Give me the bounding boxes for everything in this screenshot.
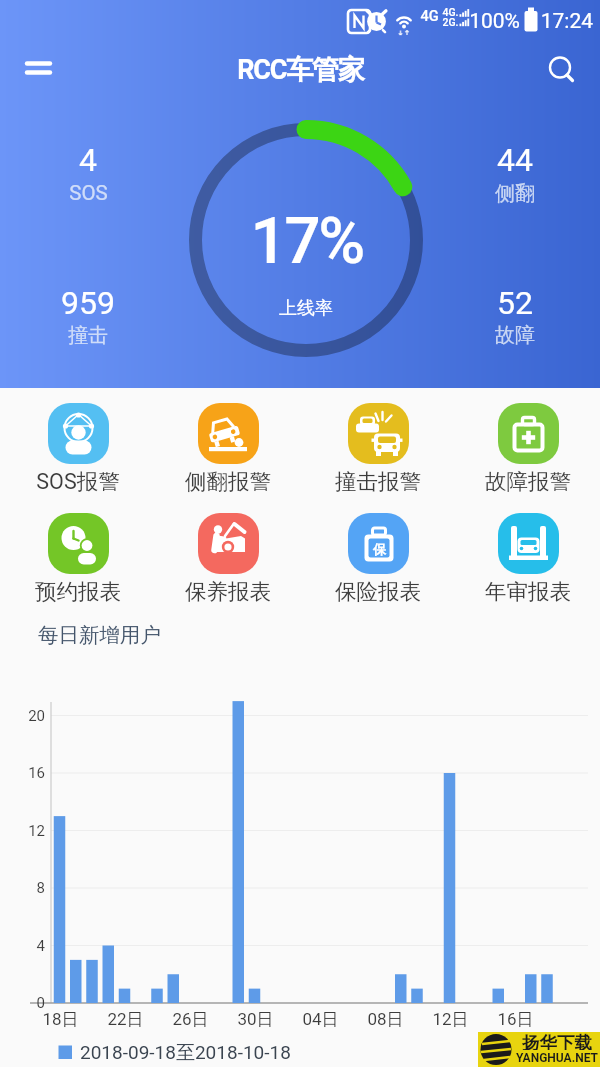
- staticText: 17:24: [540, 9, 593, 34]
- staticText: 16: [28, 764, 45, 782]
- staticText: SOS: [69, 181, 108, 205]
- staticText: 2G.: [442, 16, 459, 28]
- staticText: 2018-09-18至2018-10-18: [80, 1041, 291, 1063]
- staticText: 08日: [367, 1009, 404, 1030]
- staticText: 预约报表: [35, 578, 121, 604]
- staticText: 上线率: [279, 297, 333, 320]
- staticText: 撞击报警: [335, 468, 421, 494]
- button[interactable]: [153, 401, 303, 505]
- staticText: SOS报警: [36, 468, 120, 494]
- staticText: 44: [497, 141, 533, 179]
- staticText: 4: [79, 141, 97, 179]
- staticText: 故障报警: [485, 468, 571, 494]
- staticText: 撞击: [68, 323, 108, 348]
- button[interactable]: [453, 511, 600, 615]
- staticText: 侧翻报警: [185, 468, 271, 494]
- staticText: 每日新增用户: [38, 622, 161, 648]
- staticText: 侧翻: [495, 181, 535, 206]
- staticText: 52: [497, 284, 533, 322]
- staticText: 4G.: [442, 6, 459, 18]
- staticText: 22日: [107, 1009, 144, 1030]
- staticText: 12: [28, 822, 45, 840]
- staticText: 30日: [237, 1009, 274, 1030]
- staticText: 故障: [495, 323, 535, 348]
- staticText: 8: [36, 879, 45, 897]
- staticText: YANGHUA.NET: [516, 1051, 598, 1065]
- button[interactable]: [3, 401, 153, 505]
- staticText: 16日: [497, 1009, 534, 1030]
- staticText: 17%: [250, 204, 363, 279]
- staticText: 26日: [172, 1009, 209, 1030]
- button[interactable]: [303, 401, 453, 505]
- staticText: 保: [373, 541, 386, 557]
- staticText: 4G: [420, 8, 439, 25]
- staticText: 18日: [42, 1009, 79, 1030]
- button[interactable]: [536, 44, 586, 94]
- staticText: 保险报表: [335, 578, 421, 604]
- staticText: 100%: [469, 9, 520, 34]
- staticText: 04日: [302, 1009, 339, 1030]
- staticText: 4: [36, 937, 45, 955]
- staticText: 12日: [432, 1009, 469, 1030]
- staticText: RCC车管家: [237, 53, 364, 87]
- staticText: 年审报表: [485, 578, 571, 604]
- staticText: 0: [36, 994, 45, 1012]
- button[interactable]: [303, 511, 453, 615]
- staticText: 20: [28, 707, 45, 725]
- button[interactable]: [3, 511, 153, 615]
- button[interactable]: [453, 401, 600, 505]
- staticText: 959: [61, 284, 115, 322]
- staticText: 扬华下载: [522, 1032, 592, 1050]
- staticText: 保养报表: [185, 578, 271, 604]
- button[interactable]: [153, 511, 303, 615]
- button[interactable]: [14, 44, 64, 94]
